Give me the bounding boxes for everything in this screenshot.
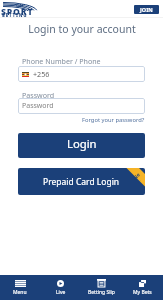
staticText: GAL [16,3,25,9]
staticText: +256 [33,69,50,79]
staticText: Login [67,136,97,151]
staticText: My Bets [133,289,152,296]
staticText: Password [22,90,55,100]
staticText: Betting Slip [88,289,115,296]
button[interactable]: Betting Slip [81,275,122,300]
button[interactable]: My Bets [122,275,163,300]
button[interactable]: Password [18,98,145,114]
button[interactable]: Menu [0,275,40,300]
staticText: Live [56,289,66,296]
button[interactable]: Login [18,133,145,158]
button[interactable]: +256 [18,66,145,82]
staticText: SPORT [1,6,34,18]
button[interactable]: JOIN [134,5,159,14]
staticText: New [131,169,145,183]
staticText: Menu [13,289,27,296]
staticText: Prepaid Card Login [43,176,120,188]
staticText: JOIN [140,6,153,13]
button[interactable]: Live [40,275,81,300]
button[interactable]: Prepaid Card Login [18,168,145,195]
staticText: Login to your account [28,22,136,36]
staticText: Password [22,101,54,111]
button[interactable]: Forgot your password? [82,116,145,124]
staticText: Phone Number / Phone [22,56,101,66]
staticText: BETTING [2,12,28,18]
